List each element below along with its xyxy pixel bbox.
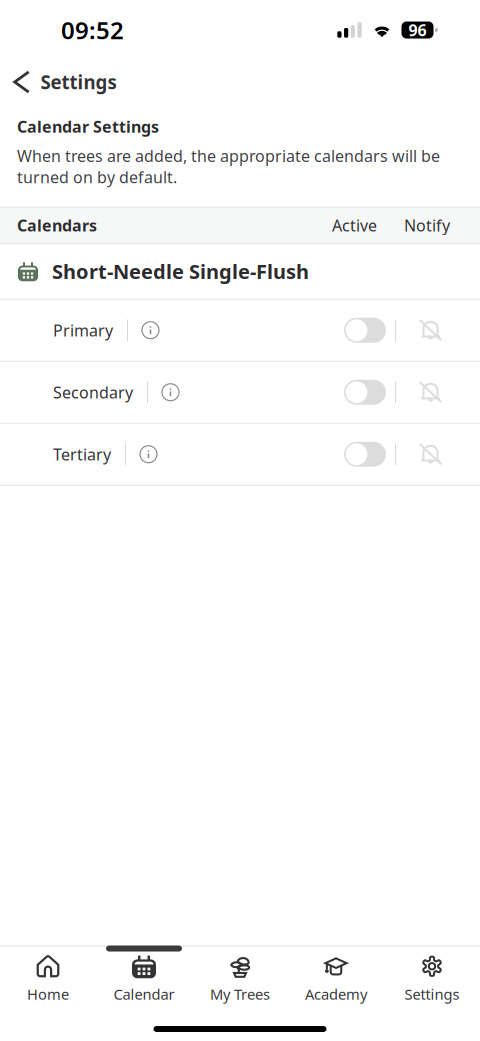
staticText: Settings: [404, 984, 459, 1004]
staticText: My Trees: [210, 984, 270, 1004]
button[interactable]: Primary: [0, 300, 480, 361]
staticText: Calendar Settings: [17, 116, 159, 137]
button[interactable]: Academy: [288, 954, 384, 1004]
staticText: Secondary: [53, 382, 133, 403]
staticText: Primary: [53, 320, 113, 341]
button[interactable]: Tertiary: [0, 424, 480, 485]
button[interactable]: My Trees: [192, 954, 288, 1004]
staticText: Settings: [40, 70, 116, 94]
staticText: Tertiary: [53, 444, 111, 465]
staticText: Notify: [404, 215, 450, 236]
button[interactable]: Settings: [0, 64, 116, 100]
staticText: Home: [27, 984, 69, 1004]
button[interactable]: Settings: [384, 954, 480, 1004]
staticText: Academy: [305, 984, 367, 1004]
staticText: Short-Needle Single-Flush: [52, 258, 309, 285]
staticText: Calendars: [17, 215, 97, 236]
staticText: 96: [408, 19, 426, 41]
staticText: When trees are added, the appropriate ca…: [17, 145, 440, 188]
staticText: 09:52: [61, 14, 124, 46]
button[interactable]: Home: [0, 954, 96, 1004]
button[interactable]: Calendar: [96, 954, 192, 1004]
staticText: Calendar: [113, 984, 174, 1004]
button[interactable]: Secondary: [0, 362, 480, 423]
staticText: Active: [332, 215, 377, 236]
